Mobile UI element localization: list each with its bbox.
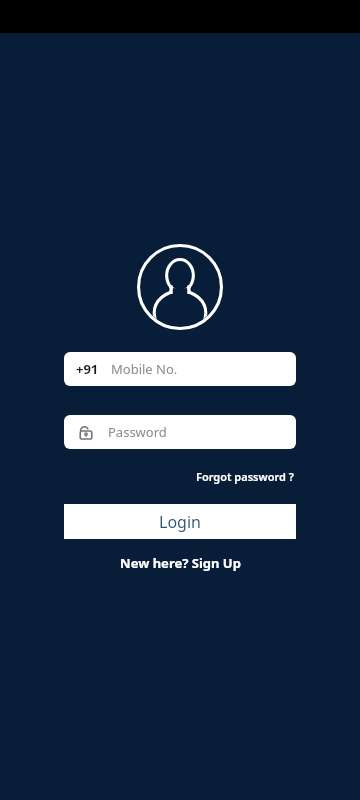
- staticText: Mobile No.: [111, 360, 178, 378]
- other: User avatar: [137, 244, 223, 330]
- button[interactable]: Forgot password ?: [194, 467, 296, 486]
- button[interactable]: Login: [64, 504, 296, 539]
- staticText: Password: [108, 423, 167, 441]
- button[interactable]: Password: [64, 415, 296, 449]
- button[interactable]: New here? Sign Up: [116, 552, 245, 574]
- staticText: +91: [76, 360, 99, 378]
- button[interactable]: +91: [64, 352, 296, 386]
- staticText: Login: [159, 511, 201, 533]
